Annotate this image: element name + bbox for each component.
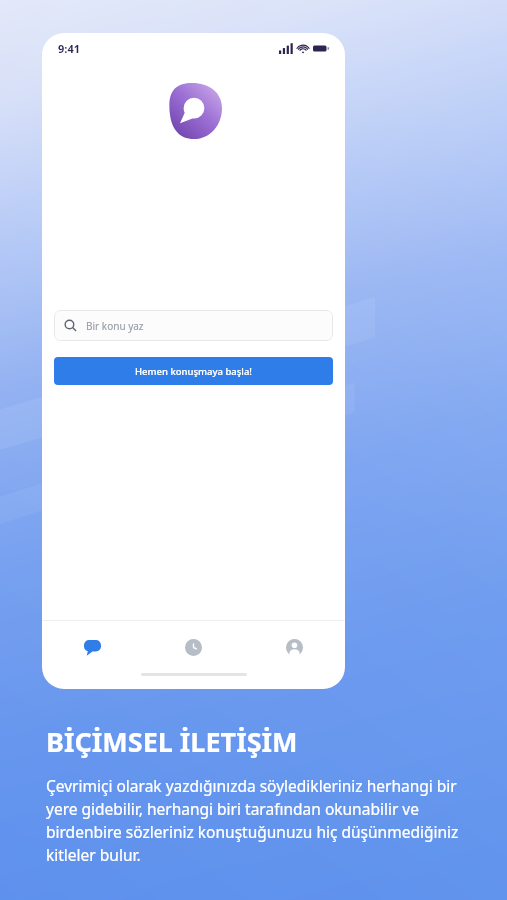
staticText: 9:41	[58, 41, 80, 56]
button[interactable]: History	[143, 621, 244, 673]
staticText: BİÇİMSEL İLETİŞİM	[46, 723, 298, 760]
button[interactable]: Bir konu yaz	[54, 310, 333, 341]
staticText: Çevrimiçi olarak yazdığınızda söyledikle…	[46, 775, 487, 866]
button[interactable]: Hemen konuşmaya başla!	[54, 357, 333, 385]
staticText: Hemen konuşmaya başla!	[135, 365, 252, 378]
staticText: Bir konu yaz	[86, 319, 144, 333]
button[interactable]: Chats	[42, 621, 143, 673]
button[interactable]: Profile	[244, 621, 345, 673]
